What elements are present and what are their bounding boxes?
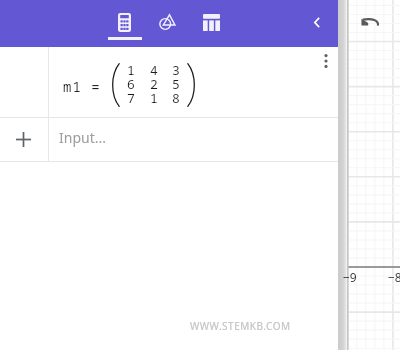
staticText: 5 [172,75,180,89]
staticText: 6 [127,75,135,89]
button[interactable]: Undo [356,10,384,34]
staticText: m1 = [63,77,101,96]
staticText: 2 [150,75,158,89]
staticText: 8 [172,89,180,103]
staticText: −9 [343,269,357,285]
staticText: −8 [388,269,400,285]
staticText: 3 [172,61,180,75]
button[interactable]: Geometry [147,0,187,47]
button[interactable]: More options [312,47,340,75]
staticText: Input... [59,128,106,147]
button[interactable]: Table [192,0,232,47]
button[interactable]: Calculator [104,0,146,47]
staticText: 1 [127,61,135,75]
button[interactable]: Input... [0,118,338,161]
button[interactable]: m1 = [0,47,338,117]
staticText: 4 [150,61,158,75]
staticText: 1 [150,89,158,103]
button[interactable]: Collapse panel [302,7,332,37]
staticText: WWW.STEMKB.COM [190,319,291,333]
staticText: 7 [127,89,135,103]
